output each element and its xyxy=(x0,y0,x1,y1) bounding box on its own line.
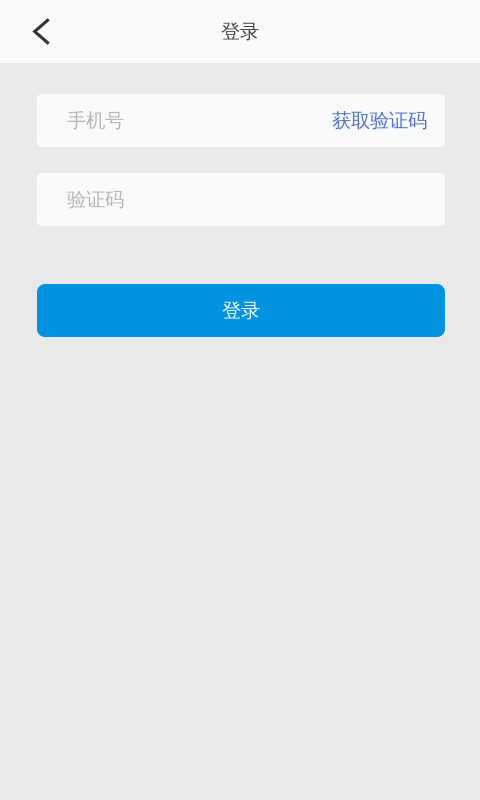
staticText: 验证码 xyxy=(67,187,124,212)
staticText: 手机号 xyxy=(67,108,124,133)
button[interactable]: 获取验证码 xyxy=(332,108,427,133)
button[interactable]: 手机号 xyxy=(37,94,445,147)
button[interactable]: 验证码 xyxy=(37,173,445,226)
staticText: 登录 xyxy=(222,298,260,323)
button[interactable]: 登录 xyxy=(37,284,445,337)
staticText: 获取验证码 xyxy=(332,108,427,133)
staticText: 登录 xyxy=(221,19,259,44)
button[interactable]: Back xyxy=(0,0,62,63)
